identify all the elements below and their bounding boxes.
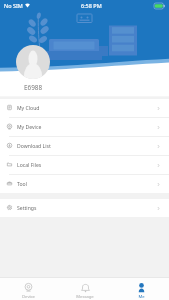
button[interactable]: Download List	[0, 137, 169, 155]
staticText: Settings	[17, 205, 37, 212]
staticText: Message	[76, 294, 94, 300]
staticText: Local Files	[17, 162, 42, 169]
staticText: My Device	[17, 124, 42, 131]
staticText: Tool	[17, 181, 27, 188]
button[interactable]: Device	[0, 278, 57, 300]
button[interactable]: Settings	[0, 199, 169, 217]
staticText: Me	[138, 294, 145, 300]
button[interactable]: Local Files	[0, 156, 169, 174]
staticText: Device	[22, 294, 35, 300]
staticText: My Cloud	[17, 105, 40, 112]
staticText: Download List	[17, 143, 51, 150]
staticText: E6988	[24, 83, 43, 92]
staticText: No SIM	[4, 2, 23, 9]
button[interactable]: Me	[113, 278, 169, 300]
button[interactable]: Profile photo	[16, 45, 50, 79]
button[interactable]: My Device	[0, 118, 169, 136]
button[interactable]: Tool	[0, 175, 169, 193]
button[interactable]: Message	[57, 278, 113, 300]
staticText: 6:58 PM	[81, 2, 102, 9]
button[interactable]: My Cloud	[0, 99, 169, 117]
